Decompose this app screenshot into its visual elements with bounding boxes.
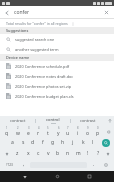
button[interactable]: contrast [71, 116, 105, 125]
button[interactable]: 2020 Conference schedule.pdf [0, 61, 114, 71]
button[interactable]: v [43, 148, 53, 159]
staticText: Device name [6, 55, 30, 60]
staticText: y [57, 130, 60, 137]
staticText: ! [87, 150, 89, 157]
staticText: 0 [97, 126, 99, 130]
staticText: j [72, 139, 74, 146]
button[interactable]: 8 [73, 126, 83, 137]
button[interactable]: Shift [103, 148, 113, 159]
button[interactable]: another suggested term [0, 44, 114, 54]
button[interactable]: m [73, 148, 83, 159]
staticText: d [31, 139, 35, 146]
staticText: q [5, 130, 9, 137]
button[interactable]: d [28, 137, 38, 148]
button[interactable]: 3 [23, 126, 33, 137]
button[interactable]: Recent apps [85, 172, 94, 181]
button[interactable]: Backspace [103, 126, 113, 137]
button[interactable]: z [12, 148, 23, 159]
button[interactable]: 5 [43, 126, 53, 137]
staticText: 9 [87, 126, 89, 130]
staticText: , [23, 161, 25, 168]
staticText: e [27, 130, 30, 137]
button[interactable]: control [36, 116, 70, 125]
button[interactable]: Shift [1, 148, 12, 159]
button[interactable]: Home [53, 172, 62, 181]
staticText: k [82, 139, 85, 146]
staticText: suggested search one [15, 37, 55, 42]
button[interactable]: j [68, 137, 78, 148]
staticText: 2020 Conference budget plan.xls [15, 94, 74, 99]
button[interactable]: 2 [12, 126, 23, 137]
button[interactable]: , [18, 159, 29, 170]
button[interactable]: h [58, 137, 68, 148]
button[interactable]: Back [0, 6, 14, 19]
staticText: c [37, 150, 40, 157]
staticText: v [47, 150, 50, 157]
button[interactable]: x [23, 148, 33, 159]
staticText: u [66, 130, 70, 137]
staticText: 4 [38, 126, 40, 130]
button[interactable]: 4 [33, 126, 43, 137]
button[interactable]: Clear search [98, 6, 114, 19]
staticText: 8 [77, 126, 79, 130]
button[interactable]: 1 [1, 126, 12, 137]
staticText: b [56, 150, 60, 157]
staticText: n [66, 150, 70, 157]
staticText: p [96, 130, 100, 137]
staticText: ?123 [6, 163, 13, 167]
staticText: r [37, 130, 40, 137]
button[interactable]: 6 [53, 126, 63, 137]
button[interactable]: 2020 Conference photos set.zip [0, 81, 114, 91]
button[interactable]: . [88, 159, 99, 170]
staticText: contract [10, 118, 26, 123]
button[interactable]: 2020 Conference notes draft.doc [0, 71, 114, 81]
button[interactable]: Search [102, 139, 110, 147]
button[interactable]: Back [20, 172, 29, 181]
button[interactable]: confer [14, 6, 98, 19]
staticText: Suggestions [6, 28, 29, 33]
button[interactable]: Emoji [99, 159, 113, 170]
button[interactable]: b [53, 148, 63, 159]
staticText: 6 [58, 126, 60, 130]
staticText: 2 [17, 126, 19, 130]
button[interactable]: g [48, 137, 58, 148]
staticText: 1 [6, 126, 8, 130]
button[interactable]: 0 [93, 126, 103, 137]
staticText: l [92, 139, 94, 146]
button[interactable]: a [7, 137, 18, 148]
staticText: w [16, 130, 20, 137]
button[interactable]: s [18, 137, 28, 148]
button[interactable]: More options [70, 21, 75, 26]
staticText: a [11, 139, 14, 146]
button[interactable]: n [63, 148, 73, 159]
staticText: control [46, 117, 60, 122]
button[interactable]: l [88, 137, 98, 148]
staticText: . [93, 161, 95, 168]
staticText: another suggested term [15, 47, 59, 52]
staticText: z [16, 150, 19, 157]
button[interactable]: 9 [83, 126, 93, 137]
button[interactable]: ?123 [1, 159, 18, 170]
button[interactable]: k [78, 137, 88, 148]
staticText: contrast [80, 118, 96, 123]
staticText: m [76, 150, 81, 157]
button[interactable]: suggested search one [0, 34, 114, 44]
staticText: o [86, 130, 90, 137]
staticText: 7 [67, 126, 69, 130]
staticText: h [61, 139, 65, 146]
button[interactable]: c [33, 148, 43, 159]
button[interactable]: f [38, 137, 48, 148]
staticText: 2020 Conference photos set.zip [15, 84, 71, 89]
button[interactable]: contract [0, 116, 35, 125]
staticText: confer [14, 9, 30, 16]
button[interactable]: Expand suggestions [105, 116, 114, 125]
staticText: f [42, 139, 44, 146]
staticText: 2020 Conference notes draft.doc [15, 74, 74, 79]
staticText: 3 [28, 126, 30, 130]
staticText: 5 [47, 126, 49, 130]
button[interactable]: 2020 Conference budget plan.xls [0, 91, 114, 101]
button[interactable]: ? [93, 148, 103, 159]
button[interactable]: 7 [63, 126, 73, 137]
button[interactable]: ! [83, 148, 93, 159]
